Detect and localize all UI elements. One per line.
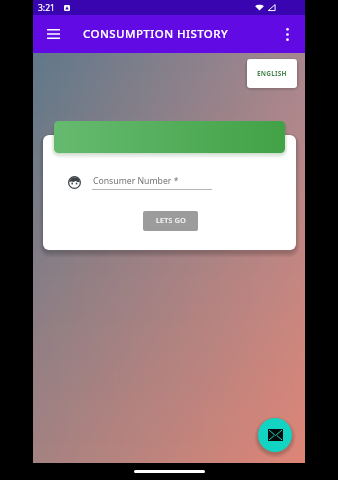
staticText: CONSUMPTION HISTORY (83, 26, 229, 42)
button[interactable]: ENGLISH (247, 59, 297, 88)
button[interactable]: LETS GO (143, 211, 198, 231)
button[interactable]: Send email (258, 418, 292, 452)
button[interactable]: Navigation menu (40, 21, 66, 47)
button[interactable]: More options (274, 21, 300, 47)
staticText: Consumer Number * (93, 175, 179, 187)
staticText: LETS GO (156, 216, 186, 226)
staticText: 3:21 (38, 2, 55, 14)
staticText: ENGLISH (257, 69, 287, 78)
